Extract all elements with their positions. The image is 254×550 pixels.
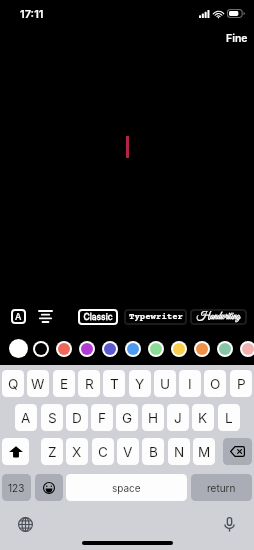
staticText: M: [198, 444, 211, 460]
button[interactable]: Y: [129, 370, 151, 397]
button[interactable]: Colour 8: [167, 337, 190, 360]
button[interactable]: Colour 11: [236, 337, 254, 360]
button[interactable]: V: [117, 438, 139, 465]
button[interactable]: space: [66, 474, 187, 501]
button[interactable]: Colour 4: [75, 337, 98, 360]
button[interactable]: S: [41, 404, 63, 431]
button[interactable]: Fine: [214, 28, 254, 50]
button[interactable]: Shift: [2, 438, 29, 465]
staticText: Classic: [83, 312, 113, 322]
staticText: C: [98, 444, 108, 460]
button[interactable]: H: [142, 404, 164, 431]
button[interactable]: Colour 7: [144, 337, 167, 360]
button[interactable]: Emoji: [35, 474, 63, 501]
button[interactable]: L: [218, 404, 240, 431]
staticText: O: [210, 376, 221, 392]
button[interactable]: Colour 5: [98, 337, 121, 360]
staticText: Handwriting: [197, 311, 240, 323]
button[interactable]: T: [103, 370, 125, 397]
staticText: U: [160, 376, 171, 392]
staticText: return: [207, 482, 236, 494]
button[interactable]: B: [142, 438, 164, 465]
button[interactable]: I: [179, 370, 201, 397]
button[interactable]: Change keyboard: [14, 513, 36, 535]
button[interactable]: return: [191, 474, 252, 501]
staticText: K: [198, 410, 208, 426]
staticText: 123: [8, 482, 25, 494]
button[interactable]: A: [15, 404, 37, 431]
button[interactable]: F: [91, 404, 113, 431]
staticText: P: [237, 376, 246, 392]
button[interactable]: D: [66, 404, 88, 431]
button[interactable]: E: [53, 370, 75, 397]
button[interactable]: Colour 10: [213, 337, 236, 360]
staticText: D: [72, 410, 82, 426]
button[interactable]: Dictation: [218, 513, 240, 535]
button[interactable]: Classic: [78, 309, 118, 325]
staticText: J: [174, 410, 182, 426]
button[interactable]: P: [230, 370, 252, 397]
button[interactable]: Colour 9: [190, 337, 213, 360]
staticText: Fine: [226, 32, 248, 45]
staticText: I: [188, 376, 192, 392]
staticText: Typewriter: [129, 312, 183, 322]
staticText: W: [31, 376, 45, 392]
staticText: G: [122, 410, 133, 426]
staticText: F: [98, 410, 107, 426]
button[interactable]: Colour 3: [52, 337, 75, 360]
staticText: Q: [8, 376, 19, 392]
staticText: 17:11: [20, 7, 44, 20]
staticText: T: [110, 376, 119, 392]
button[interactable]: Text alignment: [34, 305, 56, 327]
button[interactable]: M: [193, 438, 215, 465]
button[interactable]: X: [66, 438, 88, 465]
button[interactable]: O: [204, 370, 226, 397]
button[interactable]: Text background: [7, 305, 29, 327]
button[interactable]: Typewriter: [124, 309, 187, 325]
button[interactable]: C: [92, 438, 114, 465]
staticText: S: [48, 410, 57, 426]
button[interactable]: N: [168, 438, 190, 465]
button[interactable]: Colour 2: [29, 337, 52, 360]
button[interactable]: Backspace: [223, 438, 252, 465]
staticText: H: [148, 410, 159, 426]
button[interactable]: W: [27, 370, 49, 397]
staticText: space: [112, 482, 141, 494]
button[interactable]: Q: [2, 370, 24, 397]
staticText: Y: [135, 376, 145, 392]
button[interactable]: Handwriting: [190, 309, 247, 325]
button[interactable]: R: [78, 370, 100, 397]
button[interactable]: 123: [2, 474, 31, 501]
staticText: N: [174, 444, 185, 460]
button[interactable]: U: [154, 370, 176, 397]
staticText: Z: [48, 444, 57, 460]
staticText: B: [149, 444, 158, 460]
staticText: R: [85, 376, 94, 392]
button[interactable]: Z: [41, 438, 63, 465]
staticText: X: [72, 444, 82, 460]
button[interactable]: K: [192, 404, 214, 431]
button[interactable]: G: [116, 404, 138, 431]
staticText: L: [225, 410, 233, 426]
staticText: V: [123, 444, 133, 460]
staticText: A: [15, 311, 22, 322]
button[interactable]: Colour 1: [7, 337, 30, 360]
staticText: E: [60, 376, 69, 392]
staticText: A: [21, 410, 31, 426]
button[interactable]: Colour 6: [121, 337, 144, 360]
button[interactable]: J: [167, 404, 189, 431]
